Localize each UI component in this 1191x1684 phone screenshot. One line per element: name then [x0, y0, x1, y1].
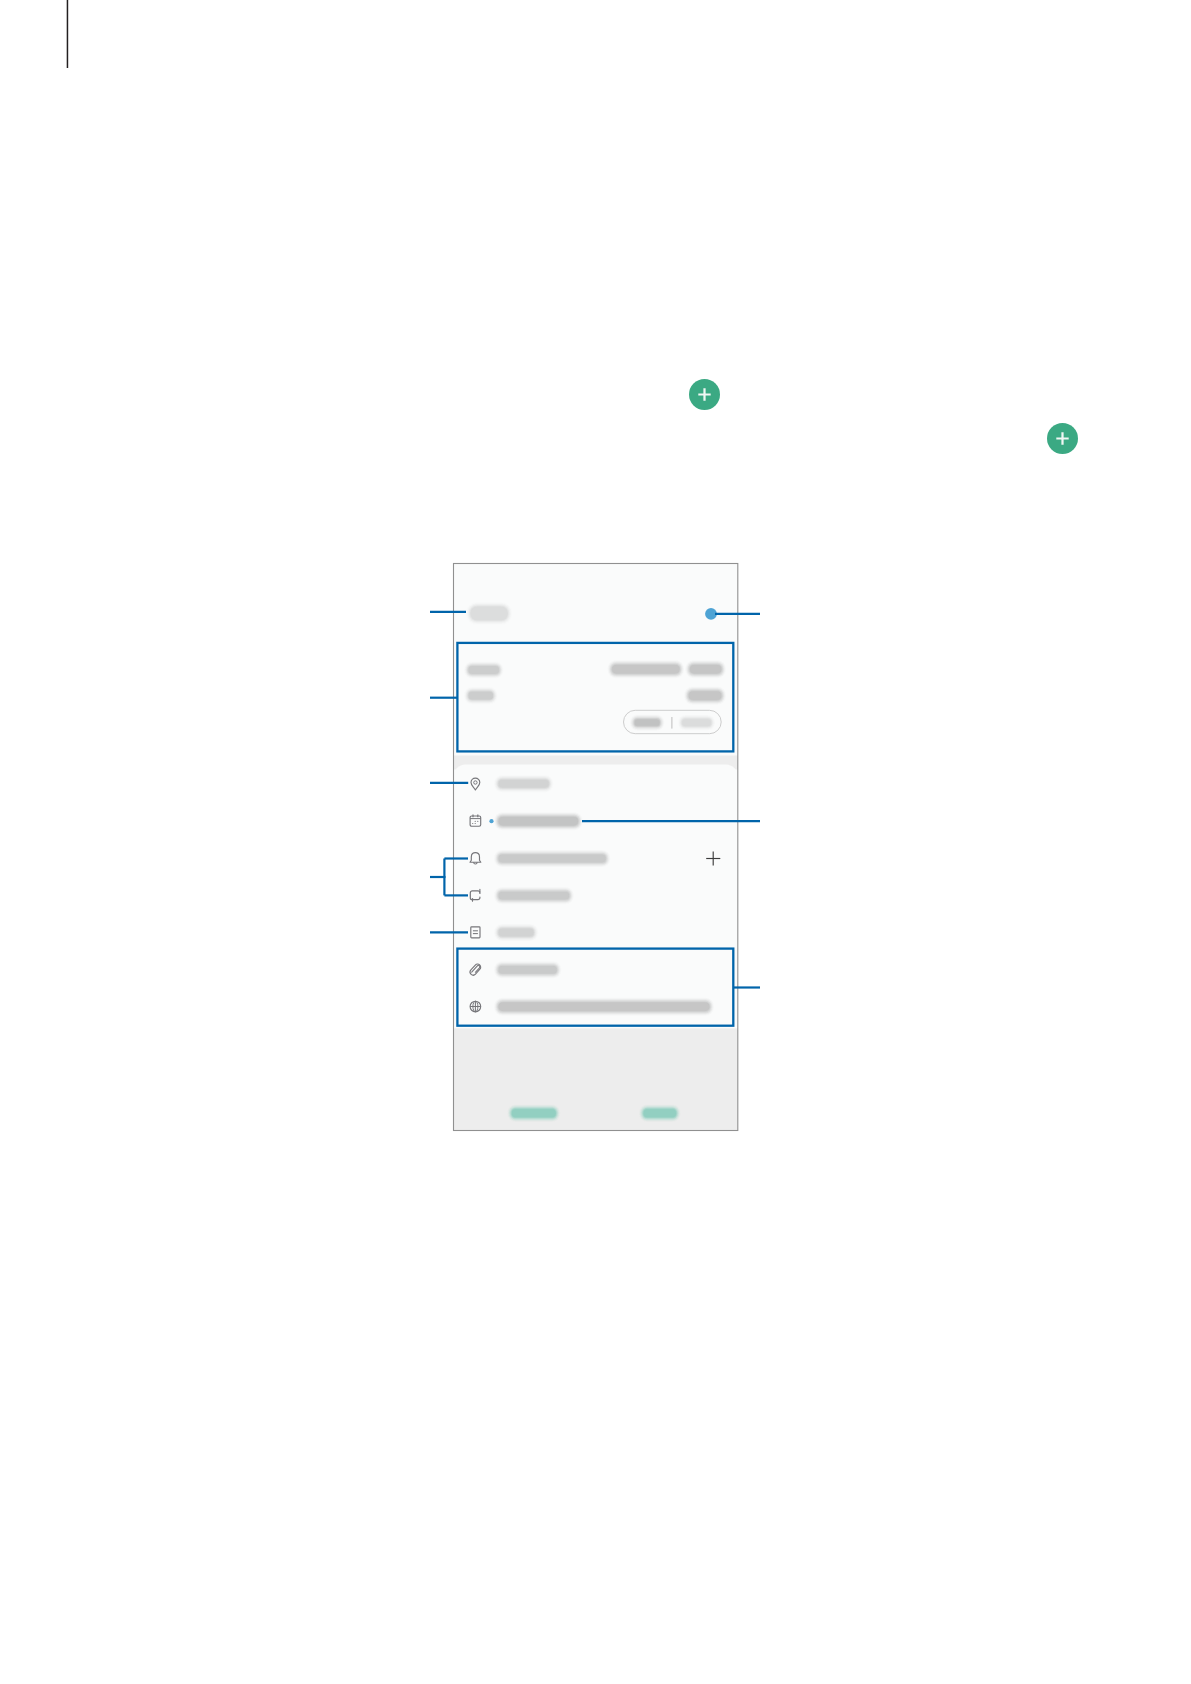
button[interactable]: Calendar: [455, 801, 738, 836]
button[interactable]: Reminder: [455, 836, 738, 872]
button[interactable]: Add event: [689, 379, 720, 410]
button[interactable]: Location: [455, 766, 738, 801]
button[interactable]: Notes: [455, 914, 738, 949]
button[interactable]: Cancel: [498, 1098, 570, 1124]
button[interactable]: Save: [628, 1098, 690, 1124]
button[interactable]: Time zone: [455, 988, 738, 1024]
button[interactable]: Add event: [1047, 423, 1078, 454]
button[interactable]: Repeat: [455, 872, 738, 908]
button[interactable]: Attach file: [455, 950, 738, 986]
button[interactable]: Add reminder: [699, 844, 727, 872]
button[interactable]: Start and end date and time: [457, 643, 734, 752]
